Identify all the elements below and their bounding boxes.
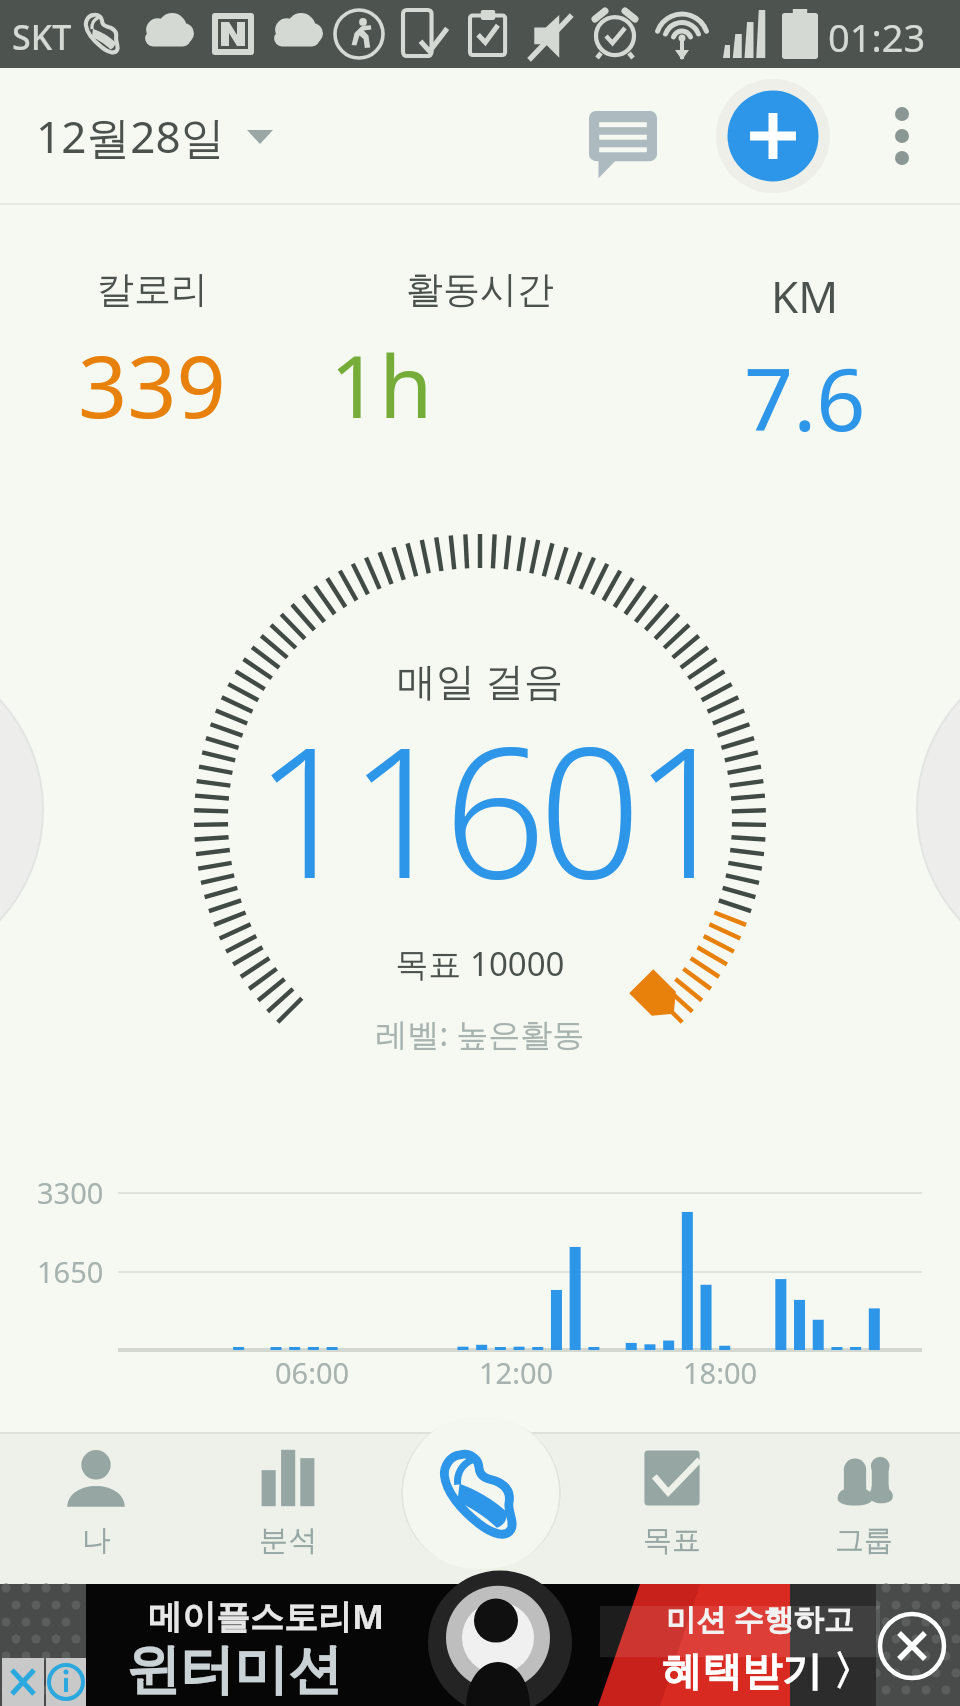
- button[interactable]: 활동시간: [330, 266, 630, 446]
- staticText: 분석: [259, 1522, 317, 1559]
- staticText: KM: [771, 266, 839, 326]
- staticText: 매일 걸음: [0, 653, 960, 706]
- staticText: 미션 수행하고: [666, 1598, 854, 1639]
- button[interactable]: Steps: [401, 1417, 561, 1569]
- staticText: 3300: [37, 1173, 104, 1212]
- button[interactable]: Advertisement: [0, 1584, 960, 1706]
- staticText: 윈터미션: [126, 1636, 342, 1704]
- staticText: 12월28일: [36, 106, 225, 166]
- button[interactable]: 12월28일: [36, 106, 273, 166]
- button[interactable]: 분석: [192, 1432, 384, 1584]
- staticText: 7.6: [744, 339, 866, 446]
- staticText: 그룹: [835, 1522, 893, 1559]
- staticText: 11601: [11, 686, 960, 931]
- staticText: 혜택받기 〉: [662, 1642, 873, 1697]
- staticText: 레벨: 높은활동: [0, 1012, 960, 1056]
- staticText: 메이플스토리M: [148, 1593, 385, 1639]
- staticText: 18:00: [683, 1353, 758, 1392]
- button[interactable]: More options: [860, 94, 944, 178]
- staticText: SKT: [12, 14, 72, 60]
- button[interactable]: 목표: [576, 1432, 768, 1584]
- button[interactable]: KM: [655, 266, 955, 446]
- button[interactable]: 그룹: [768, 1432, 960, 1584]
- button[interactable]: Close ad: [876, 1610, 948, 1682]
- staticText: 나: [82, 1522, 111, 1559]
- staticText: 1650: [37, 1252, 104, 1291]
- staticText: 목표: [643, 1522, 701, 1559]
- staticText: 339: [78, 326, 226, 443]
- button[interactable]: Add: [713, 76, 833, 196]
- button[interactable]: 나: [0, 1432, 192, 1584]
- button[interactable]: 칼로리: [2, 266, 302, 446]
- staticText: 01:23: [828, 11, 926, 63]
- staticText: 1h 49m: [330, 326, 630, 446]
- staticText: 칼로리: [97, 266, 208, 313]
- button[interactable]: Messages: [575, 96, 671, 192]
- staticText: 목표 10000: [0, 941, 960, 986]
- staticText: 06:00: [275, 1353, 350, 1392]
- staticText: 12:00: [479, 1353, 554, 1392]
- staticText: 활동시간: [406, 266, 554, 313]
